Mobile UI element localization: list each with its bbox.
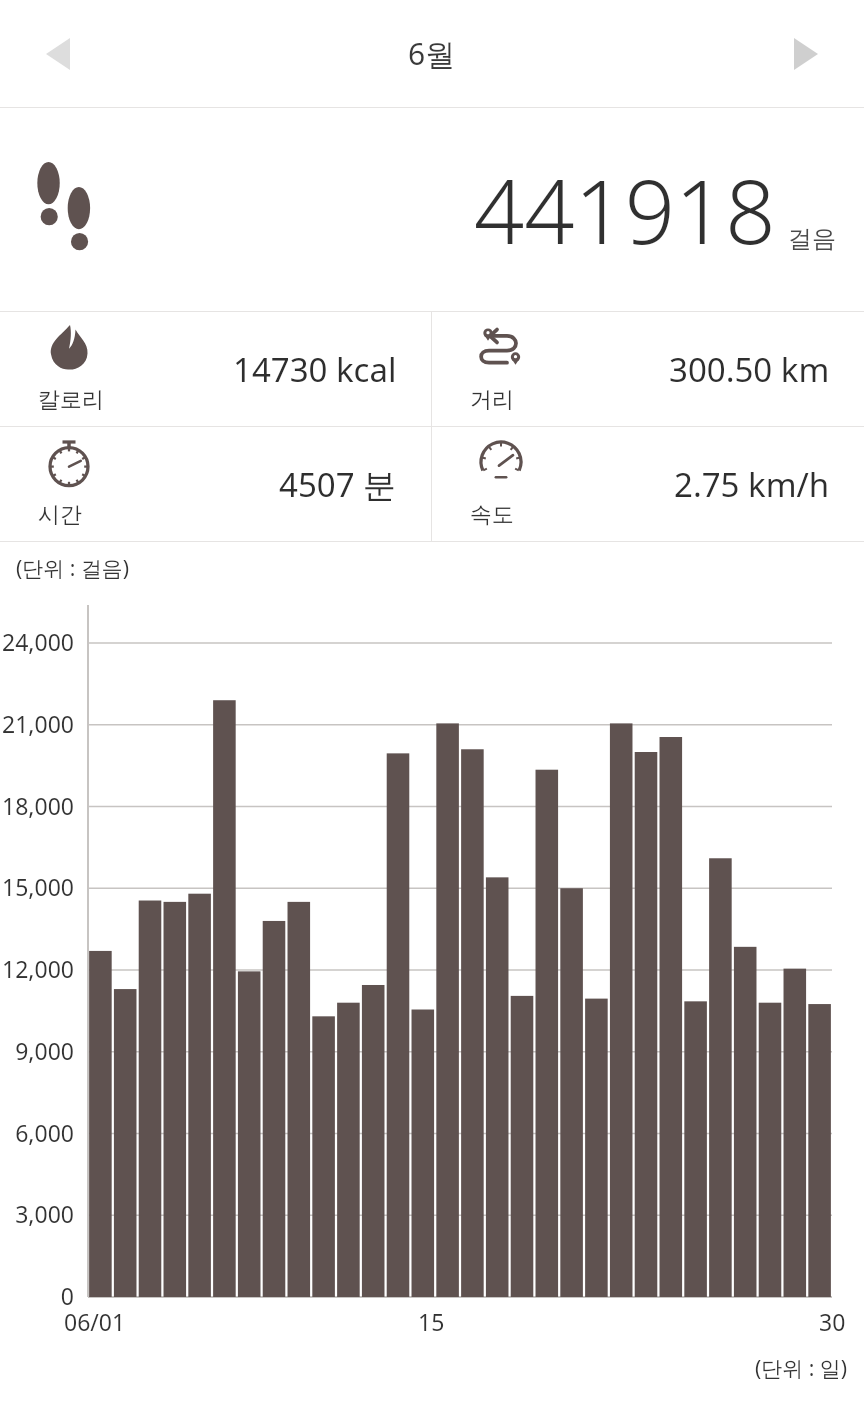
staticText: 시간	[38, 501, 82, 529]
staticText: 18,000	[0, 790, 74, 821]
staticText: 300.50 km	[669, 347, 830, 392]
staticText: 15,000	[0, 871, 74, 902]
staticText: 6,000	[0, 1117, 74, 1148]
staticText: 6월	[408, 33, 456, 74]
staticText: 24,000	[0, 626, 74, 657]
staticText: 06/01	[64, 1306, 126, 1337]
button[interactable]: 거리	[432, 312, 864, 426]
staticText: 0	[0, 1280, 74, 1311]
staticText: 441918	[474, 150, 776, 270]
staticText: 15	[418, 1306, 445, 1337]
staticText: 속도	[470, 501, 514, 529]
staticText: 4507 분	[279, 462, 397, 507]
staticText: 3,000	[0, 1198, 74, 1229]
staticText: 12,000	[0, 953, 74, 984]
staticText: (단위 : 일)	[755, 1354, 848, 1383]
button[interactable]: Previous month	[14, 10, 102, 98]
staticText: 걸음	[788, 224, 836, 254]
staticText: 9,000	[0, 1035, 74, 1066]
staticText: 거리	[470, 386, 514, 414]
button[interactable]: 시간	[0, 427, 431, 541]
staticText: 칼로리	[38, 386, 104, 414]
staticText: 14730 kcal	[233, 347, 397, 392]
button[interactable]: 속도	[432, 427, 864, 541]
button[interactable]: 칼로리	[0, 312, 431, 426]
staticText: 30	[819, 1306, 846, 1337]
button[interactable]: Next month	[762, 10, 850, 98]
staticText: 2.75 km/h	[674, 462, 830, 507]
staticText: 21,000	[0, 708, 74, 739]
staticText: (단위 : 걸음)	[16, 554, 130, 583]
button[interactable]: 441918	[0, 108, 864, 311]
